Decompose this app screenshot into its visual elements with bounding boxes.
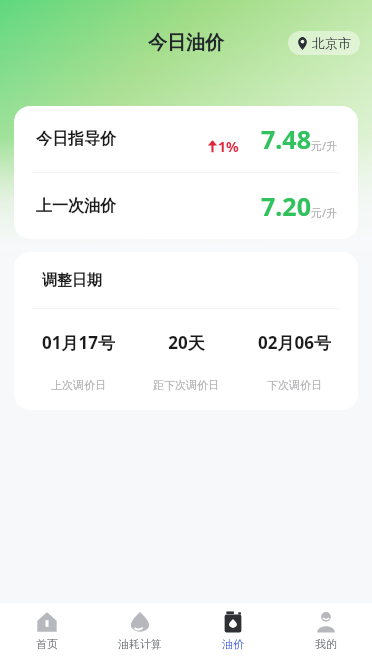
staticText: 我的 <box>315 637 337 651</box>
staticText: 上次调价日 <box>51 378 106 392</box>
staticText: 7.20 <box>261 189 311 223</box>
staticText: 首页 <box>36 637 58 651</box>
button[interactable]: 上一次油价 <box>14 173 358 239</box>
staticText: 20天 <box>168 331 205 354</box>
staticText: 油价 <box>222 637 244 651</box>
staticText: 下次调价日 <box>267 378 322 392</box>
staticText: 元/升 <box>311 138 338 153</box>
button[interactable]: 20天 <box>132 331 240 392</box>
staticText: 02月06号 <box>258 331 331 354</box>
staticText: 01月17号 <box>42 331 115 354</box>
button[interactable]: 我的 <box>279 603 372 661</box>
button[interactable]: 01月17号 <box>24 331 132 392</box>
staticText: 北京市 <box>312 35 351 51</box>
staticText: 今日指导价 <box>36 129 116 149</box>
staticText: 距下次调价日 <box>153 378 219 392</box>
staticText: 上一次油价 <box>36 196 116 216</box>
button[interactable]: 02月06号 <box>240 331 348 392</box>
staticText: 油耗计算 <box>118 637 162 651</box>
button[interactable]: 北京市 <box>288 31 360 55</box>
button[interactable]: 油价 <box>186 603 279 661</box>
staticText: 今日油价 <box>148 31 224 55</box>
staticText: 元/升 <box>311 205 338 220</box>
button[interactable]: 首页 <box>0 603 93 661</box>
staticText: 1% <box>218 137 239 156</box>
staticText: 调整日期 <box>42 271 102 290</box>
button[interactable]: 今日指导价 <box>14 106 358 172</box>
button[interactable]: 油耗计算 <box>93 603 186 661</box>
staticText: 7.48 <box>261 122 311 156</box>
